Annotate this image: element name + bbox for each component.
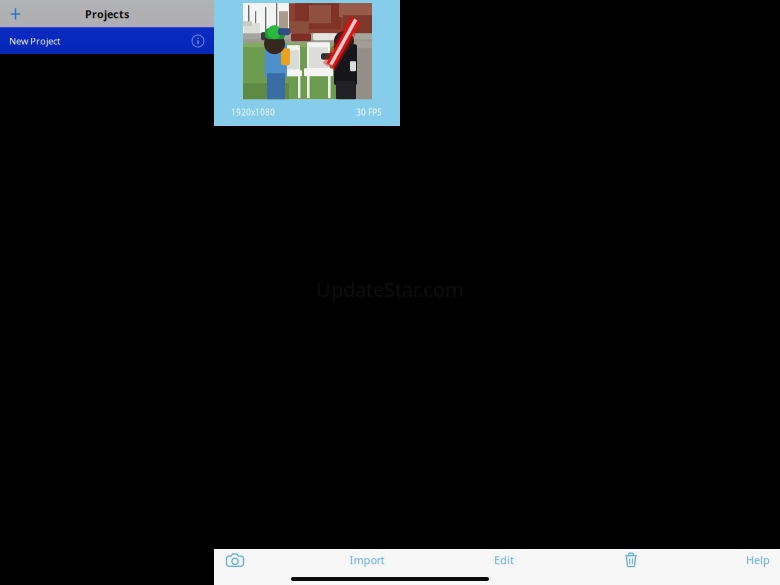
button[interactable]: Import — [256, 549, 478, 571]
button[interactable]: Help — [732, 549, 780, 571]
staticText: 30 FPS — [356, 107, 381, 118]
button[interactable]: Delete — [530, 549, 732, 571]
staticText: 1920x1080 — [231, 107, 275, 118]
staticText: UpdateStar.com — [316, 276, 464, 303]
button[interactable]: 1920x1080 — [214, 0, 400, 126]
staticText: Projects — [85, 7, 129, 21]
staticText: Edit — [494, 553, 514, 567]
staticText: New Project — [9, 35, 60, 47]
button[interactable]: Camera — [214, 549, 256, 571]
staticText: Help — [746, 553, 770, 567]
button[interactable]: New project — [0, 0, 31, 28]
staticText: Import — [349, 553, 384, 567]
button[interactable]: New Project — [0, 28, 214, 54]
button[interactable]: Edit — [478, 549, 530, 571]
